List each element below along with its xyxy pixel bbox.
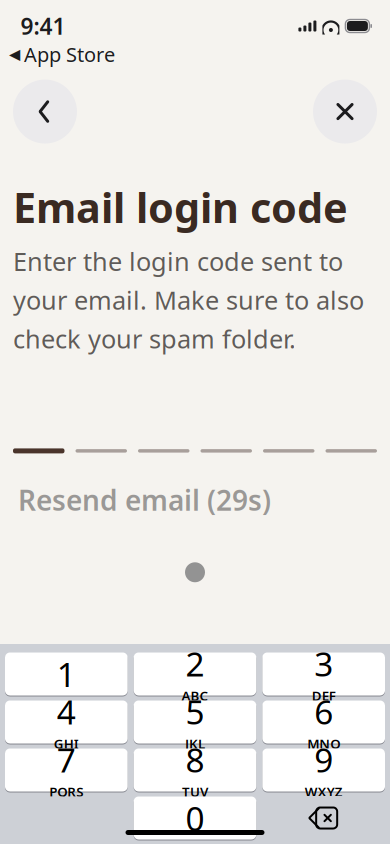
staticText: Resend email (29s) [18,481,271,519]
staticText: 6 [314,689,333,734]
staticText: DEF [312,687,336,704]
staticText: ABC [181,687,208,704]
staticText: Enter the login code sent to your email.… [13,244,364,355]
staticText: GHI [54,735,79,752]
staticText: MNO [307,735,340,752]
staticText: 7 [57,737,76,782]
button[interactable]: 8 [134,748,256,792]
staticText: ◀ [9,46,20,63]
button[interactable]: Resend email (29s) [18,475,271,525]
button[interactable]: Close [313,80,377,144]
staticText: 9 [314,737,333,782]
staticText: WXYZ [305,783,343,800]
button[interactable]: 1 [5,652,128,696]
staticText: 9:41 [20,11,65,41]
staticText: 3 [314,641,333,686]
staticText: 8 [185,737,204,782]
button[interactable]: 7 [5,748,128,792]
button[interactable]: 3 [262,652,385,696]
staticText: 5 [185,689,204,734]
staticText: JKL [185,735,205,752]
staticText: TUV [182,783,208,800]
button[interactable]: 9 [262,748,385,792]
staticText: PQRS [49,783,83,800]
button[interactable]: Back [13,80,77,144]
staticText: 4 [57,689,76,734]
staticText: 0 [185,796,204,840]
staticText: 2 [185,641,204,686]
button[interactable]: 5 [134,700,256,744]
button[interactable]: Delete [262,796,385,840]
button[interactable]: 6 [262,700,385,744]
staticText: Email login code [13,180,348,234]
button[interactable]: 4 [5,700,128,744]
staticText: 1 [57,652,76,696]
button[interactable]: 2 [134,652,256,696]
staticText: App Store [24,41,115,68]
button[interactable]: 0 [134,796,256,840]
